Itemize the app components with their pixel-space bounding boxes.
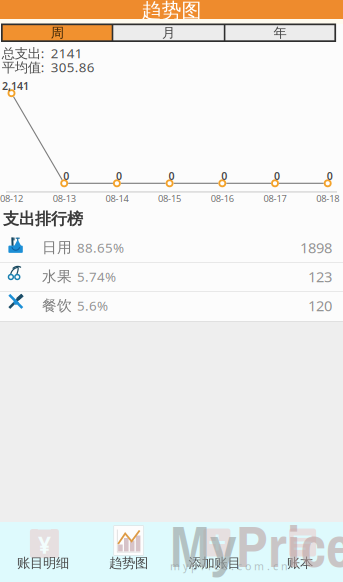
button[interactable]: 账本 bbox=[0, 0, 86, 60]
staticText: m y p r i c e . c o m . c n bbox=[170, 559, 288, 573]
button[interactable]: 年 bbox=[225, 25, 334, 40]
staticText: 08-17 bbox=[263, 192, 286, 205]
staticText: 1898 bbox=[300, 238, 332, 257]
staticText: 年 bbox=[273, 25, 286, 41]
staticText: ¥ bbox=[38, 530, 51, 560]
button[interactable]: 添加账目 bbox=[0, 0, 86, 60]
staticText: 08-18 bbox=[316, 192, 339, 205]
staticText: 0 bbox=[274, 169, 280, 183]
staticText: 水果 bbox=[42, 267, 72, 285]
staticText: 趋势图 bbox=[141, 0, 201, 23]
staticText: 平均值: 305.86 bbox=[2, 58, 95, 76]
button[interactable]: 周 bbox=[3, 25, 112, 40]
staticText: My bbox=[170, 507, 236, 582]
staticText: 趋势图 bbox=[109, 555, 148, 571]
staticText: 08-12 bbox=[0, 192, 23, 205]
staticText: 账本 bbox=[287, 555, 313, 571]
staticText: 餐饮 bbox=[42, 296, 72, 314]
staticText: 5.74% bbox=[77, 268, 116, 285]
staticText: 08-13 bbox=[53, 192, 76, 205]
staticText: Price bbox=[236, 507, 343, 582]
staticText: 总支出: 2141 bbox=[2, 44, 83, 62]
staticText: 账目明细 bbox=[17, 555, 69, 571]
staticText: 5.6% bbox=[77, 297, 108, 314]
staticText: 日用 bbox=[42, 238, 72, 256]
staticText: 周 bbox=[51, 25, 64, 41]
staticText: 添加账目 bbox=[188, 555, 240, 571]
staticText: 0 bbox=[63, 169, 69, 183]
staticText: 08-15 bbox=[158, 192, 181, 205]
button[interactable]: 餐饮 bbox=[0, 0, 343, 29]
staticText: 120 bbox=[308, 296, 332, 315]
staticText: 0 bbox=[169, 169, 175, 183]
button[interactable]: 水果 bbox=[0, 0, 343, 29]
staticText: 2,141 bbox=[2, 79, 29, 93]
button[interactable]: 趋势图 bbox=[0, 0, 86, 60]
button[interactable]: 月 bbox=[113, 25, 224, 40]
staticText: 支出排行榜 bbox=[3, 209, 83, 229]
staticText: 0 bbox=[116, 169, 122, 183]
staticText: 88.65% bbox=[77, 239, 124, 256]
staticText: 08-14 bbox=[105, 192, 128, 205]
staticText: 0 bbox=[221, 169, 227, 183]
staticText: 08-16 bbox=[211, 192, 234, 205]
staticText: 月 bbox=[162, 25, 175, 41]
button[interactable]: ¥ bbox=[0, 0, 86, 60]
staticText: 0 bbox=[327, 169, 333, 183]
staticText: 123 bbox=[308, 267, 332, 286]
button[interactable]: 日用 bbox=[0, 0, 343, 29]
